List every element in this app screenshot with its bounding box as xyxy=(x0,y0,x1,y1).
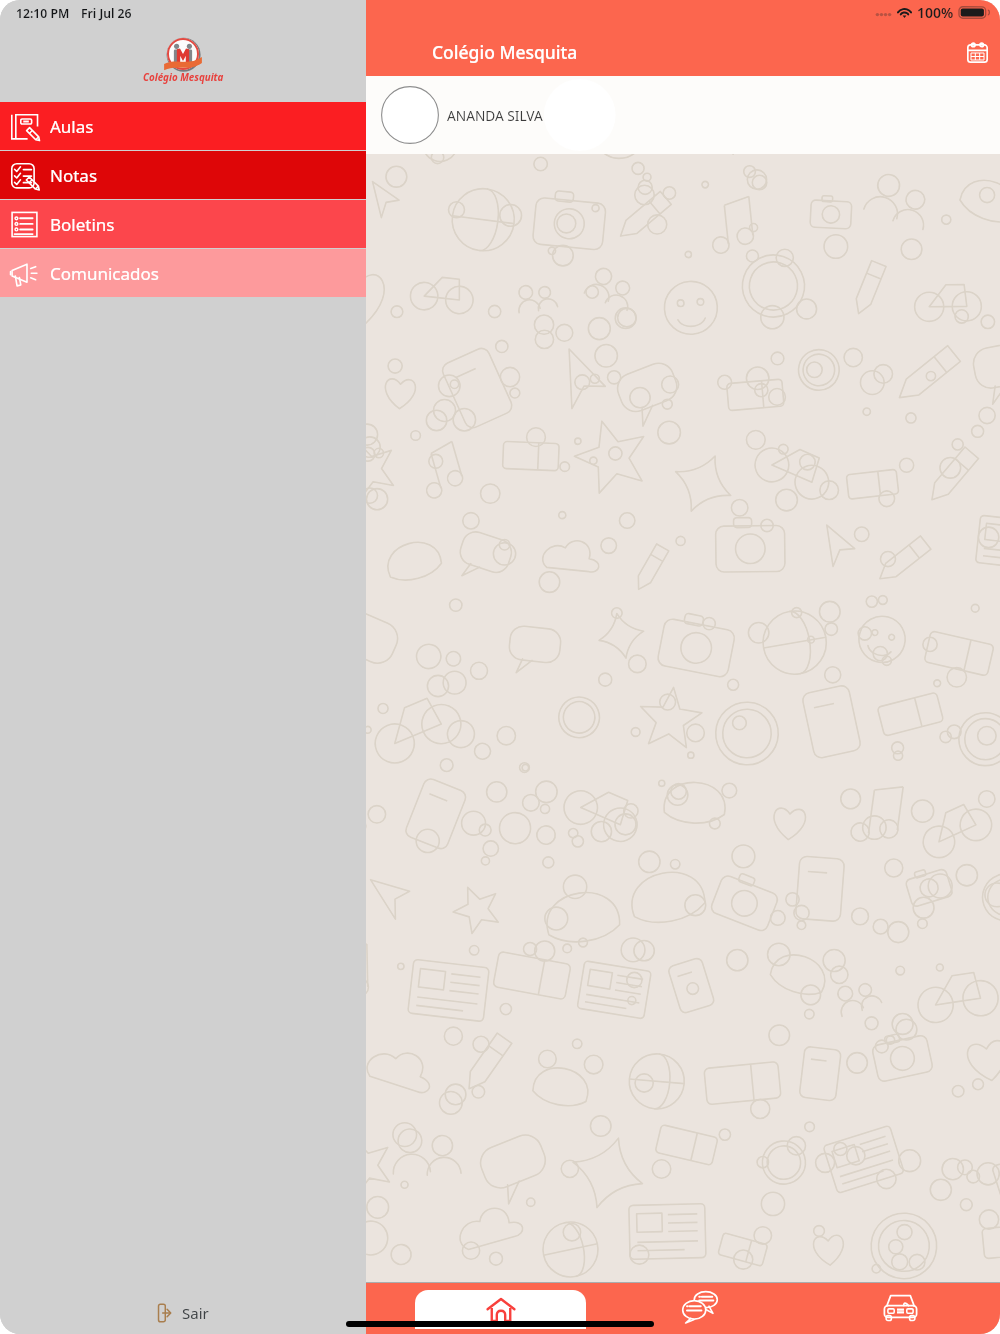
staticText: ANANDA SILVA xyxy=(447,106,543,125)
staticText: Sair xyxy=(182,1303,209,1323)
staticText: Fri Jul 26 xyxy=(81,5,132,22)
button[interactable]: Sair xyxy=(0,1292,366,1334)
button[interactable]: Home xyxy=(400,1283,600,1334)
button[interactable]: Boletins xyxy=(0,200,366,248)
button[interactable]: Notas xyxy=(0,151,366,199)
button[interactable]: Calendar xyxy=(954,29,1000,75)
staticText: Colégio Mesquita xyxy=(143,71,224,84)
staticText: Comunicados xyxy=(50,262,159,285)
button[interactable]: Comunicados xyxy=(0,249,366,297)
button[interactable]: Transport xyxy=(800,1283,1000,1334)
button[interactable]: Aulas xyxy=(0,102,366,150)
staticText: 100% xyxy=(917,3,954,22)
button[interactable]: Messages xyxy=(600,1283,800,1334)
button[interactable]: ANANDA SILVA xyxy=(366,76,1000,154)
staticText: Notas xyxy=(50,164,98,187)
staticText: Aulas xyxy=(50,115,94,138)
staticText: 12:10 PM xyxy=(16,5,70,22)
staticText: Colégio Mesquita xyxy=(432,40,578,64)
staticText: Boletins xyxy=(50,213,115,236)
